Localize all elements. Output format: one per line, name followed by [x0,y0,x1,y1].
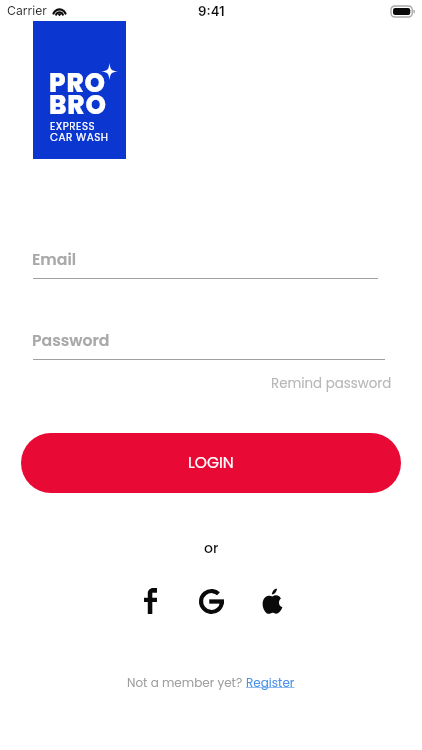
staticText: Remind password [271,374,392,393]
button[interactable]: Sign in with Apple [250,579,294,623]
staticText: EXPRESS [50,119,96,134]
staticText: 9:41 [198,3,225,19]
staticText: BRO [49,87,107,123]
staticText: CAR WASH [50,130,109,145]
staticText: or [204,538,219,558]
staticText: Not a member yet? [127,674,246,691]
button[interactable]: Sign in with Google [189,579,233,623]
button[interactable]: Register [246,674,295,691]
button[interactable]: Remind password [251,370,422,399]
staticText: Password [32,330,110,352]
staticText: LOGIN [188,452,234,474]
button[interactable]: LOGIN [21,433,401,493]
button[interactable]: Sign in with Facebook [128,579,172,623]
staticText: Carrier [7,3,47,18]
staticText: PRO [49,65,106,101]
staticText: Email [32,249,77,271]
staticText: Register [246,674,295,691]
